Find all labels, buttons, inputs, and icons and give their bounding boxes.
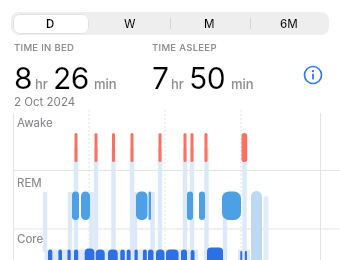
- button[interactable]: M: [169, 12, 249, 35]
- staticText: 7: [152, 60, 169, 96]
- staticText: 2 Oct 2024: [14, 95, 76, 109]
- button[interactable]: D: [11, 12, 90, 35]
- button[interactable]: [304, 66, 322, 84]
- button[interactable]: 6M: [249, 12, 329, 35]
- staticText: min: [94, 76, 117, 92]
- staticText: Awake: [17, 116, 53, 130]
- staticText: TIME ASLEEP: [152, 42, 217, 53]
- staticText: TIME IN BED: [14, 42, 75, 53]
- staticText: 50: [189, 60, 226, 96]
- staticText: Core: [17, 232, 44, 246]
- staticText: hr: [35, 76, 48, 92]
- staticText: REM: [17, 176, 42, 190]
- staticText: W: [124, 17, 136, 31]
- staticText: M: [204, 17, 215, 31]
- staticText: min: [231, 76, 254, 92]
- staticText: 8: [14, 60, 33, 96]
- button[interactable]: W: [90, 12, 169, 35]
- staticText: hr: [171, 76, 184, 92]
- staticText: D: [46, 17, 55, 31]
- staticText: 26: [53, 60, 89, 96]
- staticText: 6M: [280, 17, 298, 31]
